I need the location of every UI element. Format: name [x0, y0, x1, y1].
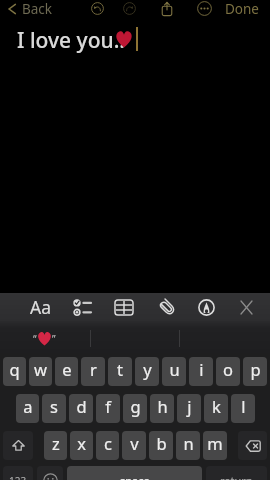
button[interactable]: Checklist	[69, 293, 95, 321]
button[interactable]: h	[150, 394, 174, 423]
staticText: f	[105, 395, 111, 417]
staticText: x	[77, 432, 86, 454]
button[interactable]: v	[122, 431, 146, 460]
button[interactable]: Close keyboard	[233, 293, 259, 321]
button[interactable]: s	[42, 394, 66, 423]
button[interactable]: q	[3, 357, 26, 386]
button[interactable]: u	[162, 357, 186, 386]
staticText: n	[183, 432, 194, 454]
button[interactable]: d	[69, 394, 93, 423]
button[interactable]: c	[96, 431, 119, 460]
button[interactable]: y	[135, 357, 159, 386]
staticText: space	[120, 473, 150, 480]
staticText: l	[241, 395, 246, 417]
button[interactable]: 123	[3, 466, 33, 480]
staticText: g	[130, 395, 141, 417]
staticText: o	[223, 358, 233, 380]
staticText: k	[212, 395, 221, 417]
button[interactable]: r	[81, 357, 105, 386]
staticText: d	[76, 395, 87, 417]
staticText: c	[104, 432, 112, 454]
staticText: 123	[9, 474, 27, 480]
button[interactable]: a	[16, 394, 39, 423]
staticText: ”	[52, 332, 56, 346]
button[interactable]: Done	[215, 0, 270, 17]
staticText: I love you..	[17, 26, 126, 55]
staticText: y	[143, 358, 152, 380]
staticText: Back	[22, 0, 53, 17]
button[interactable]: b	[149, 431, 173, 460]
button[interactable]: space	[67, 466, 202, 480]
button[interactable]: n	[176, 431, 200, 460]
staticText: p	[250, 358, 261, 380]
button[interactable]: Aa	[27, 293, 53, 321]
staticText: return	[220, 473, 253, 480]
button[interactable]: Redo	[118, 0, 140, 17]
button[interactable]: Attach	[154, 293, 180, 321]
button[interactable]	[90, 321, 180, 353]
button[interactable]: Table	[111, 293, 137, 321]
staticText: s	[50, 395, 58, 417]
staticText: b	[156, 432, 167, 454]
button[interactable]: Share	[156, 0, 178, 17]
staticText: j	[187, 395, 192, 417]
button[interactable]: return	[206, 466, 267, 480]
staticText: q	[9, 358, 20, 380]
staticText: u	[169, 358, 180, 380]
button[interactable]: Backspace	[238, 431, 267, 460]
button[interactable]: Undo	[86, 0, 108, 17]
button[interactable]: More options	[193, 0, 215, 17]
button[interactable]: i	[189, 357, 213, 386]
staticText: “	[33, 332, 37, 346]
button[interactable]: Emoji	[37, 466, 63, 480]
staticText: m	[207, 432, 223, 454]
button[interactable]: Shift	[3, 431, 33, 460]
staticText: Done	[225, 0, 259, 17]
staticText: v	[130, 432, 139, 454]
button[interactable]: w	[29, 357, 52, 386]
staticText: e	[62, 358, 72, 380]
staticText: Aa	[30, 295, 51, 319]
staticText: t	[117, 358, 123, 380]
staticText: r	[90, 358, 97, 380]
button[interactable]: Back	[0, 0, 59, 17]
button[interactable]: t	[108, 357, 132, 386]
staticText: z	[52, 432, 60, 454]
button[interactable]	[180, 321, 270, 353]
staticText: h	[157, 395, 168, 417]
button[interactable]: k	[204, 394, 228, 423]
staticText: w	[34, 358, 47, 380]
staticText: a	[23, 395, 33, 417]
button[interactable]: z	[44, 431, 67, 460]
button[interactable]: x	[70, 431, 93, 460]
button[interactable]: p	[243, 357, 267, 386]
button[interactable]: l	[231, 394, 255, 423]
staticText: i	[199, 358, 204, 380]
button[interactable]: e	[55, 357, 78, 386]
button[interactable]: o	[216, 357, 240, 386]
button[interactable]: Markup	[193, 293, 219, 321]
button[interactable]: m	[203, 431, 227, 460]
button[interactable]: j	[177, 394, 201, 423]
button[interactable]: g	[123, 394, 147, 423]
button[interactable]: “	[0, 321, 90, 353]
button[interactable]: f	[96, 394, 120, 423]
